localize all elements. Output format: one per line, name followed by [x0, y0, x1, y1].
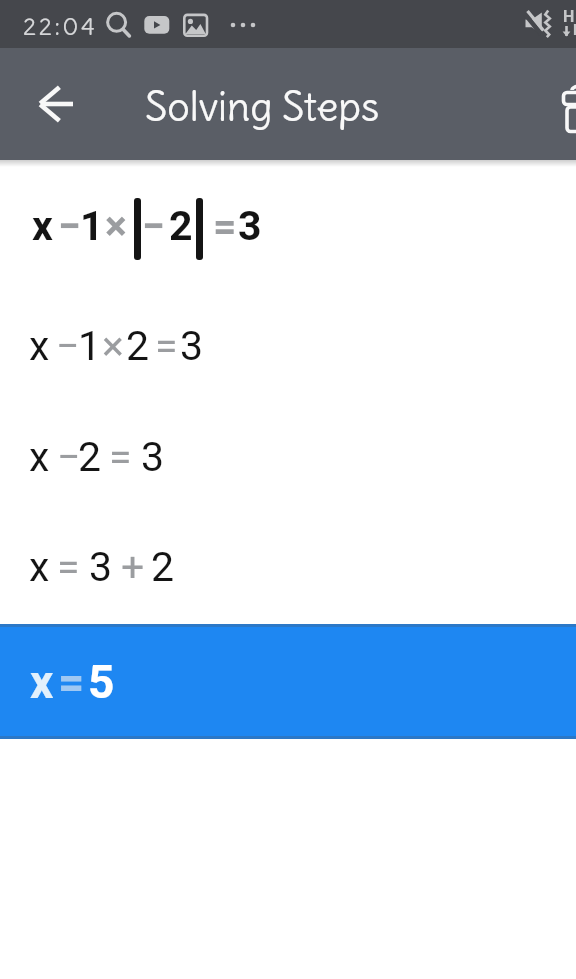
staticText: =: [58, 655, 85, 709]
staticText: −: [142, 202, 165, 250]
staticText: =: [57, 543, 80, 591]
staticText: −: [56, 322, 80, 370]
button[interactable]: x: [0, 294, 576, 398]
staticText: 22:04: [23, 11, 98, 41]
staticText: +: [121, 543, 145, 591]
staticText: x: [32, 202, 53, 250]
staticText: ×: [102, 322, 124, 370]
staticText: 2: [151, 543, 175, 591]
staticText: x: [29, 322, 50, 370]
staticText: 3: [141, 433, 165, 481]
staticText: 3: [180, 322, 204, 370]
staticText: 5: [88, 655, 115, 709]
button[interactable]: x: [0, 160, 576, 294]
button[interactable]: x: [0, 514, 576, 621]
staticText: 1: [78, 322, 102, 370]
staticText: −: [58, 202, 81, 250]
button[interactable]: [29, 76, 85, 132]
staticText: =: [213, 202, 237, 250]
staticText: ×: [105, 202, 127, 250]
staticText: x: [30, 655, 54, 709]
staticText: −: [57, 433, 81, 481]
staticText: 2: [169, 202, 193, 250]
staticText: 2: [78, 433, 102, 481]
button[interactable]: [552, 76, 576, 136]
staticText: H: [563, 7, 575, 26]
staticText: 3: [89, 543, 113, 591]
staticText: 3: [238, 202, 262, 250]
staticText: =: [109, 433, 132, 481]
button[interactable]: x: [0, 398, 576, 514]
staticText: 2: [126, 322, 150, 370]
staticText: x: [29, 543, 50, 591]
staticText: 1: [80, 202, 104, 250]
staticText: x: [29, 433, 50, 481]
staticText: Solving Steps: [145, 82, 380, 132]
staticText: =: [155, 322, 178, 370]
button[interactable]: x: [0, 624, 576, 739]
